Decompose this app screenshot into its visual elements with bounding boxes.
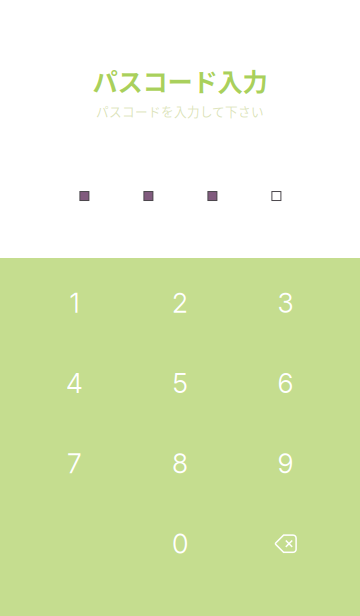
staticText: 7 — [67, 447, 82, 480]
button[interactable]: 1 — [22, 263, 127, 343]
button[interactable]: 5 — [127, 343, 233, 423]
button[interactable]: 4 — [22, 343, 127, 423]
staticText: 0 — [172, 528, 188, 560]
button[interactable]: 6 — [233, 343, 338, 423]
staticText: 1 — [69, 287, 79, 319]
button[interactable]: 0 — [127, 504, 233, 584]
staticText: パスコードを入力して下さい — [96, 102, 264, 120]
staticText: 5 — [172, 367, 187, 399]
button[interactable]: 3 — [233, 263, 338, 343]
button[interactable]: 9 — [233, 423, 338, 504]
staticText: 6 — [277, 367, 293, 399]
button[interactable]: 2 — [127, 263, 233, 343]
button[interactable]: Delete — [233, 504, 338, 584]
button[interactable]: 8 — [127, 423, 233, 504]
staticText: パスコード入力 — [92, 62, 267, 99]
button[interactable]: 7 — [22, 423, 127, 504]
staticText: 4 — [66, 367, 83, 399]
staticText: 8 — [172, 447, 188, 480]
staticText: 9 — [277, 447, 293, 480]
staticText: 2 — [172, 287, 188, 319]
staticText: 3 — [277, 287, 293, 319]
